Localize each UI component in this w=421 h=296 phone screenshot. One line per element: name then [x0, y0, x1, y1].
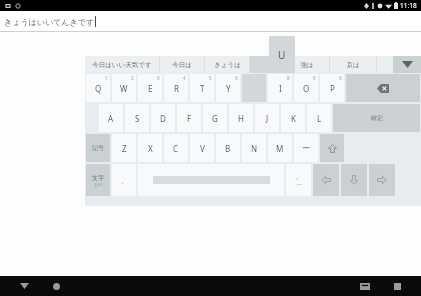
- staticText: 記号: [92, 144, 104, 152]
- staticText: G: [212, 113, 218, 124]
- button[interactable]: F: [177, 104, 201, 132]
- button[interactable]: O: [294, 74, 318, 102]
- button[interactable]: 今日はいい天気です: [85, 56, 159, 73]
- button[interactable]: D: [151, 104, 175, 132]
- staticText: 京は: [346, 61, 360, 69]
- staticText: Q: [95, 83, 102, 94]
- staticText: 文字: [92, 174, 104, 182]
- staticText: Z: [122, 143, 127, 154]
- button[interactable]: N: [242, 134, 266, 162]
- staticText: ー: [297, 181, 302, 187]
- staticText: M: [276, 143, 284, 154]
- button[interactable]: Move cursor left: [313, 164, 339, 196]
- button[interactable]: R: [164, 74, 188, 102]
- staticText: きょうはいいてんきです: [4, 17, 95, 27]
- staticText: N: [251, 143, 258, 154]
- staticText: L: [317, 113, 322, 124]
- staticText: Y: [226, 83, 231, 94]
- staticText: 確定: [371, 114, 383, 122]
- staticText: 3: [157, 75, 160, 81]
- button[interactable]: 確定: [333, 104, 420, 132]
- staticText: きょうは: [214, 61, 241, 69]
- staticText: J: [266, 113, 269, 124]
- button[interactable]: K: [281, 104, 305, 132]
- button[interactable]: きょうはいいてんきです: [0, 11, 421, 31]
- staticText: ー: [302, 143, 310, 153]
- button[interactable]: 記号: [86, 134, 110, 162]
- button[interactable]: 強は: [285, 56, 329, 73]
- button[interactable]: Move cursor down: [341, 164, 367, 196]
- staticText: 8: [287, 75, 290, 81]
- staticText: 4: [183, 75, 186, 81]
- button[interactable]: Q: [86, 74, 110, 102]
- button[interactable]: [250, 56, 284, 73]
- button[interactable]: M: [268, 134, 292, 162]
- staticText: 今日はいい天気です: [92, 61, 152, 69]
- button[interactable]: I: [268, 74, 292, 102]
- staticText: E: [148, 83, 153, 94]
- button[interactable]: 。: [286, 164, 311, 196]
- staticText: S: [135, 113, 140, 124]
- button[interactable]: C: [164, 134, 188, 162]
- staticText: 0: [339, 75, 342, 81]
- button[interactable]: Move cursor right: [369, 164, 395, 196]
- button[interactable]: Space: [138, 164, 284, 196]
- staticText: 1: [105, 75, 108, 81]
- button[interactable]: G: [203, 104, 227, 132]
- staticText: I: [279, 83, 282, 94]
- button[interactable]: Y: [216, 74, 240, 102]
- button[interactable]: Hide keyboard: [14, 276, 34, 296]
- staticText: あA1: [94, 182, 103, 187]
- staticText: 強は: [300, 61, 314, 69]
- staticText: K: [291, 113, 296, 124]
- staticText: O: [303, 83, 310, 94]
- staticText: 。: [296, 173, 302, 181]
- staticText: B: [225, 143, 231, 154]
- staticText: R: [174, 83, 179, 94]
- button[interactable]: Recent apps: [387, 276, 407, 296]
- button[interactable]: 今日は: [160, 56, 204, 73]
- button[interactable]: T: [190, 74, 214, 102]
- staticText: 9: [313, 75, 316, 81]
- button[interactable]: X: [138, 134, 162, 162]
- button[interactable]: S: [125, 104, 149, 132]
- staticText: A: [108, 113, 114, 124]
- button[interactable]: H: [229, 104, 253, 132]
- staticText: 、: [121, 176, 128, 185]
- button[interactable]: Home: [46, 276, 66, 296]
- button[interactable]: きょうは: [205, 56, 249, 73]
- staticText: C: [173, 143, 179, 154]
- staticText: X: [148, 143, 153, 154]
- button[interactable]: P: [320, 74, 344, 102]
- button[interactable]: W: [112, 74, 136, 102]
- staticText: 11:18: [400, 1, 417, 10]
- button[interactable]: Z: [112, 134, 136, 162]
- button[interactable]: Shift: [320, 134, 344, 162]
- staticText: F: [187, 113, 192, 124]
- staticText: U: [278, 48, 286, 62]
- button[interactable]: V: [190, 134, 214, 162]
- button[interactable]: Show more suggestions: [393, 56, 421, 73]
- staticText: H: [238, 113, 244, 124]
- button[interactable]: E: [138, 74, 162, 102]
- button[interactable]: ー: [294, 134, 318, 162]
- button[interactable]: 京は: [330, 56, 376, 73]
- button[interactable]: J: [255, 104, 279, 132]
- button[interactable]: Backspace: [346, 74, 420, 102]
- staticText: 6: [235, 75, 238, 81]
- button[interactable]: L: [307, 104, 331, 132]
- staticText: D: [160, 113, 166, 124]
- button[interactable]: A: [99, 104, 123, 132]
- staticText: 2: [131, 75, 134, 81]
- staticText: 今日は: [172, 61, 192, 69]
- staticText: P: [330, 83, 335, 94]
- staticText: W: [120, 83, 128, 94]
- button[interactable]: 文字: [86, 164, 110, 196]
- button[interactable]: B: [216, 134, 240, 162]
- staticText: 5: [209, 75, 212, 81]
- button[interactable]: Switch keyboard: [355, 276, 375, 296]
- staticText: V: [200, 143, 205, 154]
- staticText: T: [200, 83, 205, 94]
